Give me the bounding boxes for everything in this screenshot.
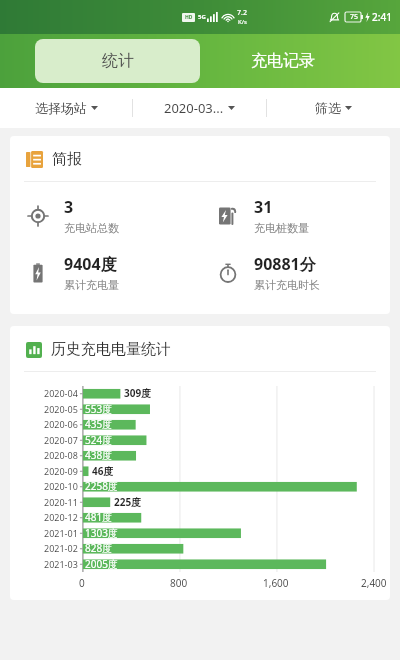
button[interactable]: 筛选 bbox=[267, 88, 400, 128]
other: Energy bbox=[28, 263, 48, 283]
staticText: 435度 bbox=[85, 417, 113, 431]
staticText: 438度 bbox=[85, 448, 113, 462]
staticText: 2258度 bbox=[85, 479, 118, 493]
other: Chargers bbox=[218, 206, 238, 226]
staticText: 2020-12 bbox=[44, 511, 78, 523]
staticText: 31 bbox=[254, 196, 273, 218]
staticText: 2020-04 bbox=[44, 387, 78, 399]
staticText: 1303度 bbox=[85, 526, 118, 540]
staticText: 2:41 bbox=[372, 10, 392, 24]
staticText: 7.2 bbox=[237, 8, 247, 18]
staticText: 90881分 bbox=[254, 253, 316, 275]
staticText: 553度 bbox=[85, 402, 113, 416]
other: Duration bbox=[218, 263, 238, 283]
staticText: 简报 bbox=[52, 150, 82, 169]
staticText: 3 bbox=[64, 196, 74, 218]
staticText: 2020-03... bbox=[164, 99, 224, 117]
staticText: 75 bbox=[350, 12, 359, 22]
staticText: 选择场站 bbox=[35, 100, 87, 116]
staticText: 9404度 bbox=[64, 253, 117, 275]
staticText: 累计充电时长 bbox=[254, 278, 320, 292]
button[interactable]: 2020-03... bbox=[133, 88, 266, 128]
staticText: 524度 bbox=[85, 433, 113, 447]
staticText: 充电桩数量 bbox=[254, 221, 309, 235]
staticText: 2020-06 bbox=[44, 418, 78, 430]
button[interactable]: 选择场站 bbox=[0, 88, 132, 128]
staticText: 800 bbox=[170, 576, 188, 590]
staticText: 46度 bbox=[92, 464, 114, 478]
staticText: 2020-11 bbox=[44, 496, 78, 508]
staticText: 充电记录 bbox=[251, 51, 315, 71]
staticText: 2005度 bbox=[85, 557, 118, 571]
staticText: HD bbox=[185, 14, 193, 21]
button[interactable]: 充电记录 bbox=[200, 39, 365, 83]
staticText: 2020-07 bbox=[44, 434, 78, 446]
staticText: 309度 bbox=[124, 386, 152, 400]
staticText: 2020-09 bbox=[44, 465, 78, 477]
staticText: 2020-05 bbox=[44, 403, 78, 415]
staticText: 筛选 bbox=[315, 100, 341, 116]
staticText: K/s bbox=[238, 18, 247, 26]
staticText: 统计 bbox=[102, 51, 134, 71]
staticText: 225度 bbox=[114, 495, 142, 509]
staticText: 5G bbox=[198, 13, 206, 21]
staticText: 历史充电电量统计 bbox=[51, 340, 171, 359]
button[interactable]: 统计 bbox=[35, 39, 200, 83]
staticText: 828度 bbox=[85, 541, 113, 555]
other: Stations bbox=[28, 206, 48, 226]
staticText: 2020-10 bbox=[44, 480, 78, 492]
staticText: 2021-03 bbox=[44, 558, 78, 570]
staticText: 累计充电量 bbox=[64, 278, 119, 292]
staticText: 1,600 bbox=[263, 576, 289, 590]
staticText: 充电站总数 bbox=[64, 221, 119, 235]
staticText: 2020-08 bbox=[44, 449, 78, 461]
staticText: 2021-02 bbox=[44, 542, 78, 554]
staticText: 481度 bbox=[85, 510, 113, 524]
staticText: 0 bbox=[79, 576, 85, 590]
staticText: 2021-01 bbox=[44, 527, 78, 539]
staticText: 2,400 bbox=[361, 576, 387, 590]
